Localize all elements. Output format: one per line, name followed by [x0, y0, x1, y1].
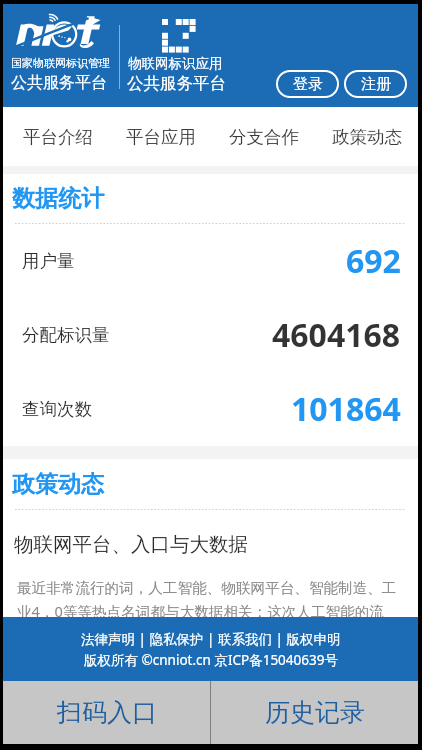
- staticText: 查询次数: [22, 398, 92, 420]
- button[interactable]: 分支合作: [212, 107, 315, 166]
- button[interactable]: 用户量: [22, 224, 401, 298]
- button[interactable]: 历史记录: [211, 681, 418, 744]
- button[interactable]: 注册: [344, 70, 407, 98]
- staticText: 版权所有 ©cnniot.cn 京ICP备15040639号: [84, 651, 338, 669]
- staticText: 用户量: [22, 250, 75, 272]
- staticText: 历史记录: [265, 697, 365, 728]
- staticText: 政策动态: [332, 126, 402, 148]
- staticText: 分配标识量: [22, 324, 110, 346]
- staticText: 公共服务平台: [11, 73, 107, 93]
- staticText: 公共服务平台: [127, 73, 226, 94]
- staticText: 登录: [293, 75, 323, 94]
- other: niot logo: [15, 15, 95, 47]
- staticText: 最近非常流行的词，人工智能、物联网平台、智能制造、工业4．0等等热点名词都与大数…: [17, 579, 398, 621]
- staticText: 国家物联网标识管理: [11, 56, 110, 70]
- staticText: 692: [346, 239, 401, 283]
- button[interactable]: 平台介绍: [7, 107, 109, 166]
- staticText: 101864: [291, 387, 401, 431]
- button[interactable]: 扫码入口: [3, 681, 210, 744]
- staticText: 法律声明 | 隐私保护 | 联系我们 | 版权申明: [81, 630, 341, 648]
- staticText: 平台应用: [126, 126, 196, 148]
- staticText: 政策动态: [12, 470, 104, 499]
- button[interactable]: 查询次数: [22, 372, 401, 446]
- button[interactable]: 登录: [276, 70, 339, 98]
- staticText: 数据统计: [12, 184, 104, 213]
- staticText: 扫码入口: [57, 697, 157, 728]
- staticText: 注册: [361, 75, 391, 94]
- button[interactable]: 政策动态: [315, 107, 418, 166]
- staticText: 物联网平台、入口与大数据: [14, 532, 248, 557]
- button[interactable]: 分配标识量: [22, 298, 401, 372]
- staticText: 分支合作: [229, 126, 299, 148]
- button[interactable]: 物联网平台、入口与大数据: [3, 532, 418, 621]
- button[interactable]: 平台应用: [109, 107, 212, 166]
- staticText: 4604168: [272, 313, 401, 357]
- staticText: 平台介绍: [23, 126, 93, 148]
- staticText: 物联网标识应用: [128, 55, 223, 72]
